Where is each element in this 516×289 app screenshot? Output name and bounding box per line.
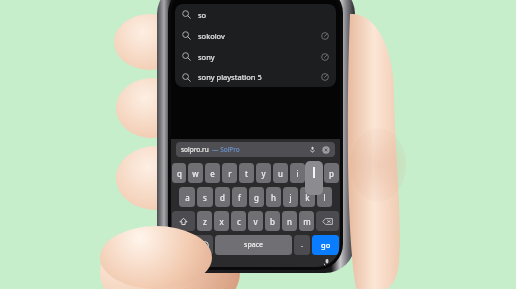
button[interactable]: Key preview <box>305 161 323 195</box>
staticText: t <box>245 168 248 179</box>
button[interactable]: y <box>256 163 271 183</box>
button[interactable]: solpro.ru <box>176 142 335 157</box>
button[interactable]: p <box>324 163 339 183</box>
button[interactable]: a <box>179 187 195 207</box>
button[interactable]: v <box>248 211 263 231</box>
button[interactable]: t <box>239 163 254 183</box>
staticText: space <box>244 240 263 250</box>
button[interactable]: b <box>265 211 280 231</box>
button[interactable]: h <box>266 187 281 207</box>
button[interactable]: c <box>231 211 246 231</box>
button[interactable]: j <box>283 187 298 207</box>
staticText: g <box>254 192 259 203</box>
button[interactable]: sony playstation 5 <box>175 67 336 87</box>
button[interactable]: . <box>294 235 310 255</box>
staticText: sony <box>198 52 215 62</box>
button[interactable]: sony <box>175 46 336 67</box>
staticText: l <box>323 192 326 203</box>
button[interactable]: s <box>197 187 213 207</box>
button[interactable]: so <box>175 4 336 25</box>
staticText: s <box>203 192 207 203</box>
staticText: sony playstation 5 <box>198 72 262 82</box>
staticText: go <box>321 240 331 250</box>
button[interactable]: go <box>312 235 339 255</box>
staticText: o <box>312 168 317 179</box>
button[interactable]: Shift <box>172 211 195 231</box>
staticText: 123 <box>176 240 189 250</box>
button[interactable]: Emoji <box>195 235 213 255</box>
button[interactable]: i <box>290 163 305 183</box>
staticText: v <box>253 216 258 227</box>
button[interactable]: Dictation <box>322 258 332 267</box>
staticText: h <box>271 192 276 203</box>
staticText: p <box>329 168 334 179</box>
button[interactable]: k <box>300 187 315 207</box>
staticText: r <box>228 168 232 179</box>
button[interactable]: d <box>215 187 230 207</box>
button[interactable]: q <box>172 163 186 183</box>
button[interactable]: m <box>299 211 314 231</box>
staticText: a <box>185 192 190 203</box>
button[interactable]: n <box>282 211 297 231</box>
button[interactable]: f <box>232 187 247 207</box>
button[interactable]: x <box>214 211 229 231</box>
staticText: z <box>203 216 207 227</box>
staticText: . <box>301 240 303 250</box>
staticText: i <box>296 168 299 179</box>
button[interactable]: e <box>205 163 220 183</box>
staticText: — SolPro <box>212 145 240 154</box>
button[interactable]: o <box>307 163 322 183</box>
staticText: y <box>261 168 266 179</box>
staticText: q <box>177 168 182 179</box>
button[interactable]: space <box>215 235 292 255</box>
button[interactable]: r <box>222 163 237 183</box>
staticText: c <box>237 216 241 227</box>
staticText: x <box>219 216 224 227</box>
staticText: k <box>305 192 310 203</box>
button[interactable]: g <box>249 187 264 207</box>
staticText: solpro.ru <box>181 145 209 154</box>
staticText: e <box>210 168 215 179</box>
button[interactable]: z <box>197 211 212 231</box>
staticText: u <box>278 168 283 179</box>
staticText: f <box>238 192 241 203</box>
button[interactable]: Clear <box>322 146 330 154</box>
staticText: m <box>303 216 311 227</box>
staticText: sokolov <box>198 31 225 41</box>
button[interactable]: 123 <box>172 235 193 255</box>
staticText: n <box>287 216 292 227</box>
staticText: d <box>220 192 225 203</box>
button[interactable]: l <box>317 187 332 207</box>
button[interactable]: u <box>273 163 288 183</box>
button[interactable]: Backspace <box>316 211 339 231</box>
staticText: so <box>198 10 207 20</box>
staticText: j <box>289 192 292 203</box>
button[interactable]: w <box>188 163 203 183</box>
staticText: w <box>192 168 199 179</box>
other: Voice search <box>309 146 316 153</box>
button[interactable]: sokolov <box>175 25 336 46</box>
staticText: b <box>270 216 275 227</box>
